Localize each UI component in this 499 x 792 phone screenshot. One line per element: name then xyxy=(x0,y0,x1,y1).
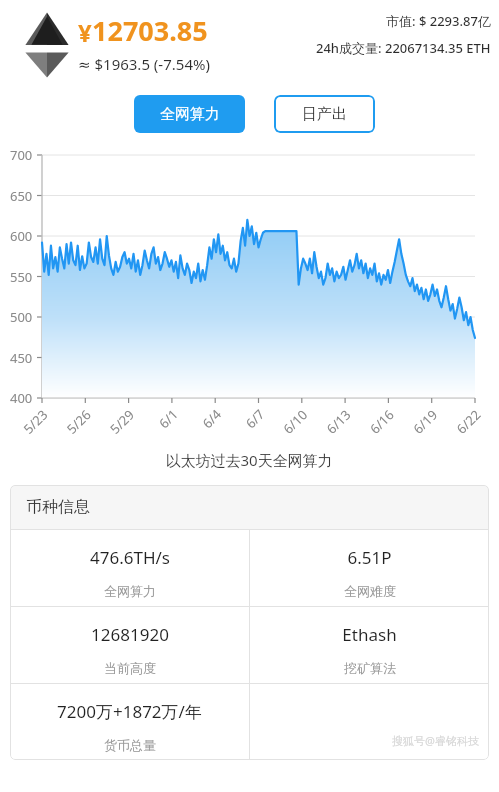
staticText: 币种信息 xyxy=(26,497,90,517)
staticText: 12703.85 xyxy=(92,12,208,49)
staticText: Ethash xyxy=(342,623,397,646)
button[interactable]: 7200万+1872万/年 xyxy=(10,684,249,760)
button[interactable]: 全网算力 xyxy=(134,95,245,133)
button[interactable]: 12681920 xyxy=(10,607,249,683)
staticText: 24h成交量: 22067134.35 ETH xyxy=(316,39,491,57)
staticText: 476.6TH/s xyxy=(90,546,170,569)
button[interactable]: 6.51P xyxy=(250,530,489,606)
other: Ethereum logo xyxy=(20,8,74,82)
staticText: 市值: $ 2293.87亿 xyxy=(386,12,491,30)
staticText: ¥ xyxy=(78,16,92,49)
staticText: 搜狐号@睿铭科技 xyxy=(392,733,479,748)
staticText: ≈ $1963.5 (-7.54%) xyxy=(78,54,210,74)
staticText: 挖矿算法 xyxy=(344,660,396,676)
button[interactable]: 476.6TH/s xyxy=(10,530,249,606)
staticText: 货币总量 xyxy=(104,737,156,753)
staticText: 全网算力 xyxy=(160,105,220,124)
button[interactable]: 日产出 xyxy=(274,95,375,133)
staticText: 全网难度 xyxy=(344,583,396,599)
staticText: 12681920 xyxy=(91,623,169,646)
staticText: 日产出 xyxy=(302,105,347,124)
staticText: 全网算力 xyxy=(104,583,156,599)
staticText: 当前高度 xyxy=(104,660,156,676)
staticText: 6.51P xyxy=(347,546,392,569)
staticText: 7200万+1872万/年 xyxy=(57,700,202,723)
button[interactable]: Ethash xyxy=(250,607,489,683)
